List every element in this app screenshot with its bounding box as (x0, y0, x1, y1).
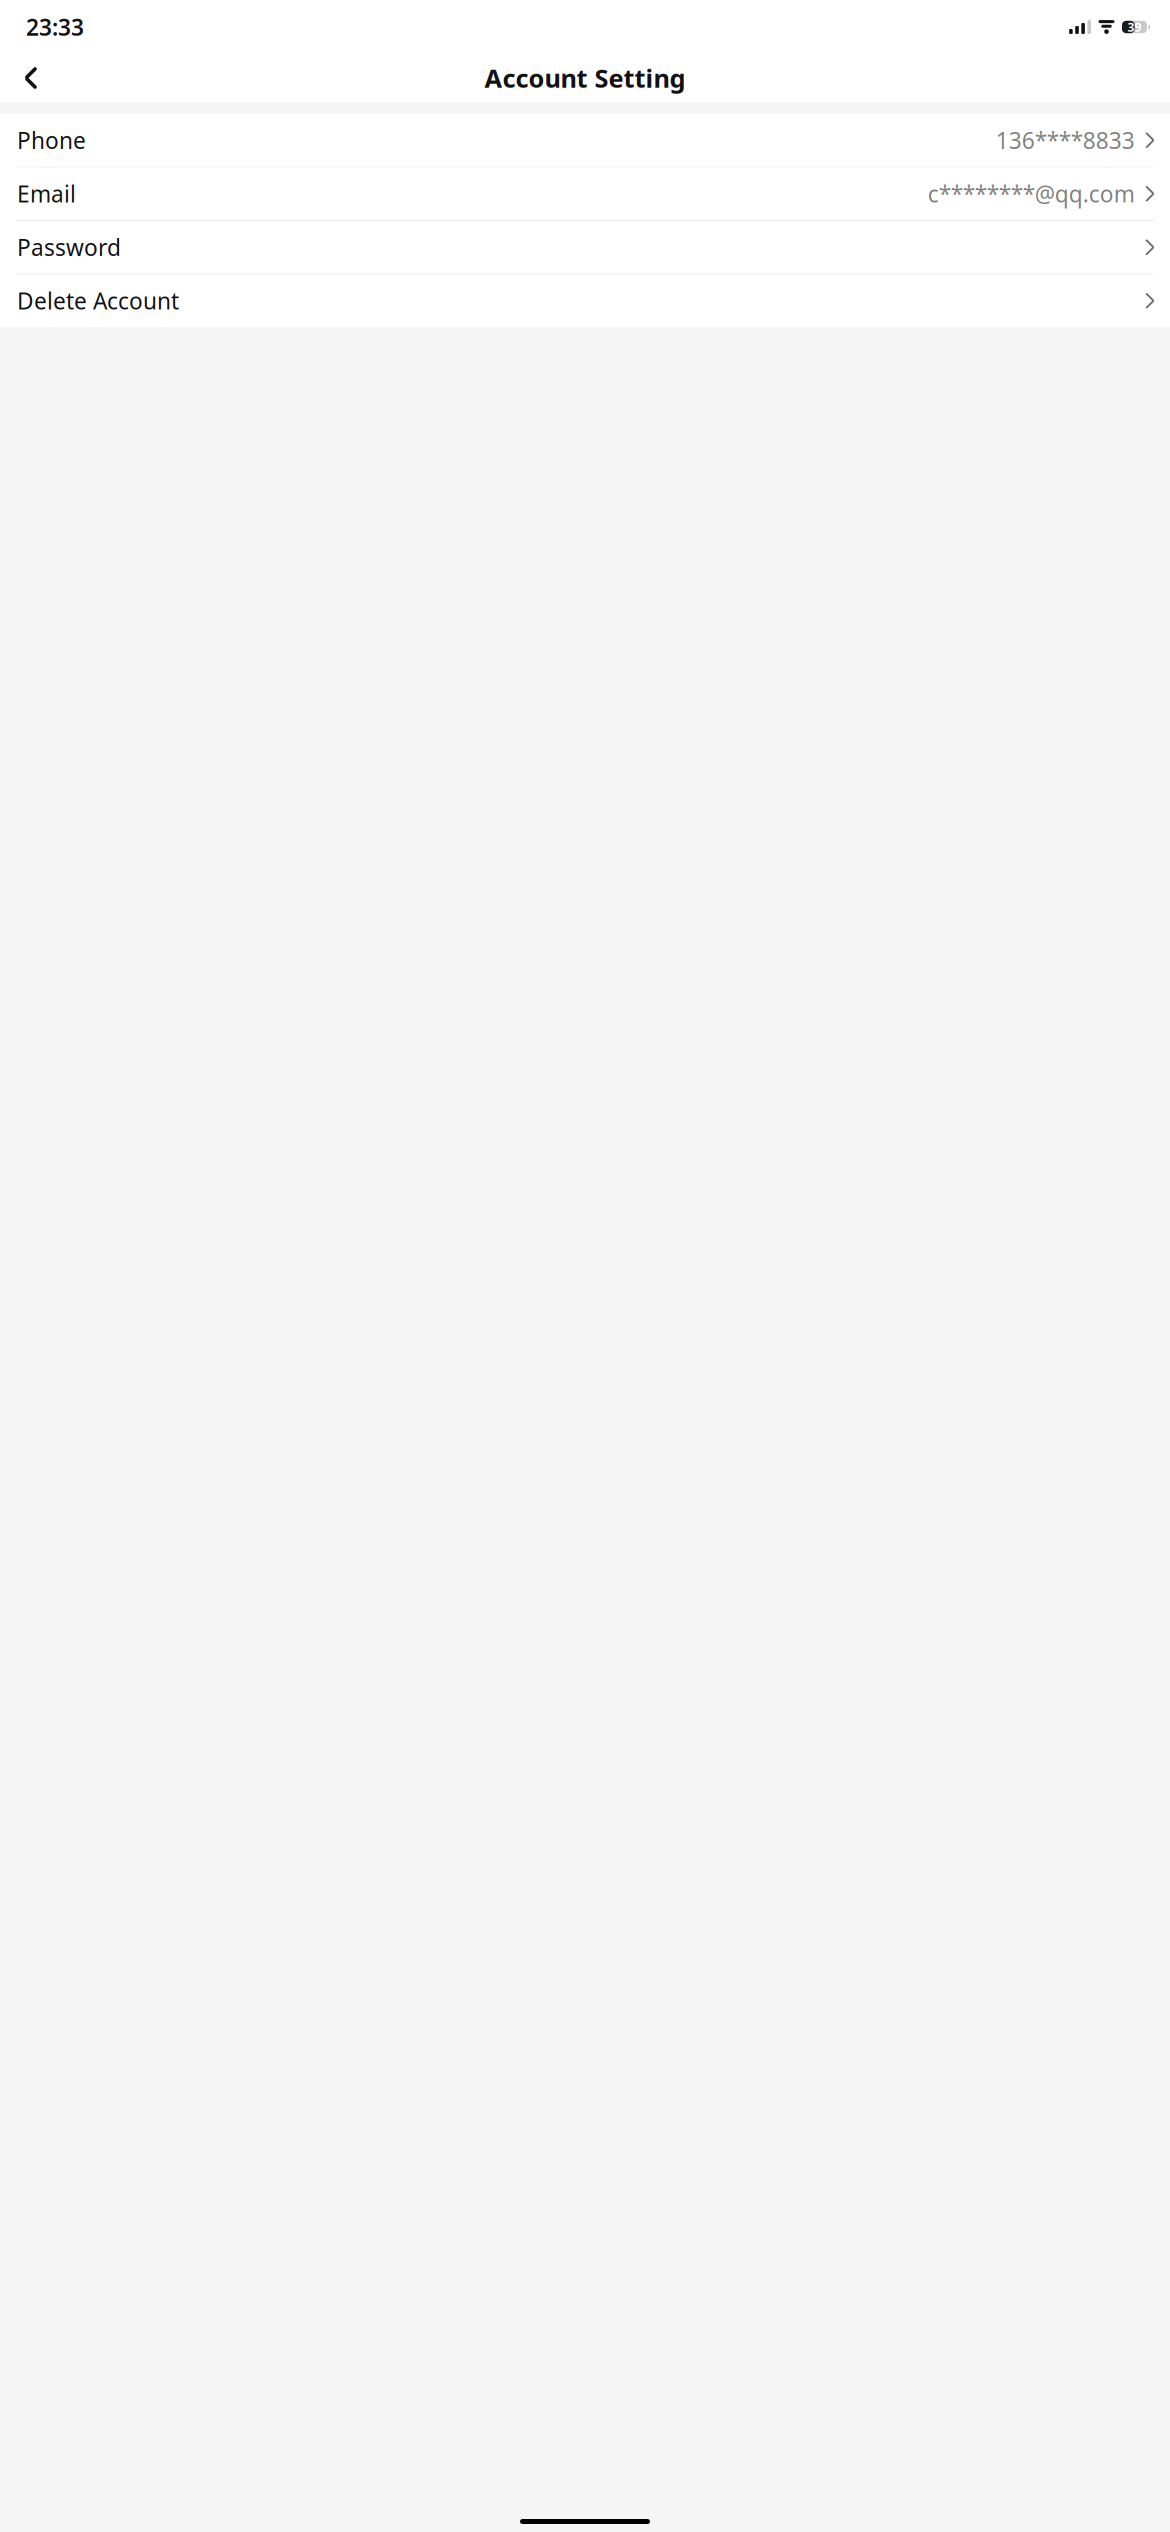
staticText: Phone (17, 125, 86, 155)
staticText: c********@qq.com (928, 179, 1135, 209)
staticText: Delete Account (17, 286, 179, 316)
button[interactable]: Phone (0, 114, 1170, 166)
button[interactable]: Back (9, 56, 53, 100)
staticText: Password (17, 232, 121, 262)
staticText: 39 (1127, 19, 1141, 35)
staticText: Email (17, 179, 76, 209)
button[interactable]: Email (0, 167, 1170, 220)
staticText: 136****8833 (996, 125, 1135, 155)
button[interactable]: Password (0, 221, 1170, 273)
staticText: 23:33 (26, 12, 84, 42)
staticText: Account Setting (484, 61, 685, 95)
button[interactable]: Delete Account (0, 274, 1170, 327)
